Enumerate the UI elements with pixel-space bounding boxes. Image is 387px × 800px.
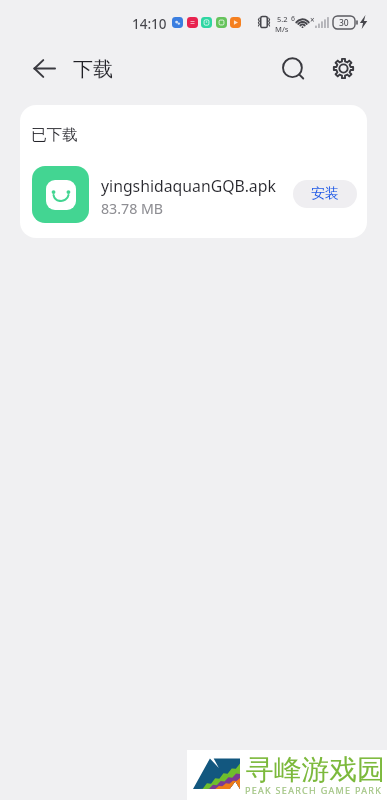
- staticText: ×: [310, 14, 315, 25]
- staticText: 83.78 MB: [101, 199, 164, 218]
- button[interactable]: Search: [272, 47, 316, 91]
- staticText: 5.2: [277, 14, 288, 24]
- staticText: 下载: [73, 57, 113, 82]
- staticText: 30: [339, 17, 349, 29]
- staticText: 6: [291, 14, 296, 24]
- staticText: 寻峰游戏园: [246, 752, 385, 787]
- staticText: 14:10: [132, 15, 167, 33]
- button[interactable]: yingshidaquanGQB.apk: [20, 159, 367, 229]
- button[interactable]: Settings: [321, 46, 365, 90]
- button[interactable]: Back: [22, 46, 66, 90]
- staticText: yingshidaquanGQB.apk: [101, 175, 276, 197]
- staticText: M/s: [275, 24, 289, 34]
- staticText: 已下载: [31, 125, 78, 145]
- button[interactable]: 安装: [293, 180, 357, 208]
- staticText: 安装: [311, 185, 339, 203]
- staticText: PEAK SEARCH GAME PARK: [245, 784, 383, 796]
